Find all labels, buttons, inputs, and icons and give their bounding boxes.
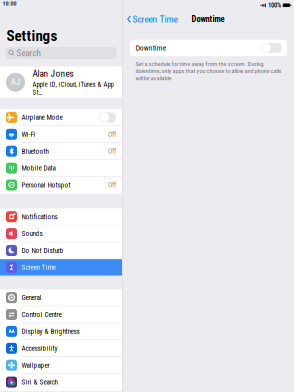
button[interactable]: Control Centre [0, 306, 122, 323]
staticText: Screen Time [132, 14, 177, 25]
button[interactable]: Notifications [0, 208, 122, 225]
button[interactable]: Accessibility [0, 340, 122, 357]
staticText: Display & Brightness [21, 327, 79, 336]
staticText: Wi-Fi [21, 130, 35, 138]
button[interactable]: Bluetooth [0, 143, 122, 160]
staticText: Personal Hotspot [21, 181, 70, 189]
button[interactable]: Search [5, 47, 116, 59]
staticText: Wallpaper [21, 361, 49, 369]
staticText: Notifications [21, 212, 57, 221]
button[interactable]: Wi-Fi [0, 126, 122, 143]
staticText: Settings [6, 27, 57, 45]
staticText: Siri & Search [21, 378, 57, 386]
staticText: AA [8, 328, 14, 334]
button[interactable]: Screen Time [0, 259, 122, 276]
staticText: Set a schedule for time away from the sc… [135, 60, 281, 82]
staticText: Airplane Mode [21, 113, 62, 122]
staticText: Downtime [136, 43, 167, 52]
staticText: 10:00 [2, 0, 16, 7]
staticText: Accessibility [21, 344, 57, 352]
button[interactable]: Personal Hotspot [0, 177, 122, 194]
staticText: Off [108, 181, 116, 189]
staticText: Apple ID, iCloud, iTunes & App St… [32, 80, 113, 96]
button[interactable]: Mobile Data [0, 160, 122, 177]
button[interactable]: Siri & Search [0, 374, 122, 391]
button[interactable]: Do Not Disturb [0, 242, 122, 259]
button[interactable]: General [0, 289, 122, 306]
button[interactable]: Sounds [0, 225, 122, 242]
staticText: Off [108, 130, 116, 138]
button[interactable]: Screen Time [123, 12, 181, 26]
staticText: Downtime [192, 14, 225, 24]
button[interactable]: AJ [0, 66, 122, 98]
staticText: Do Not Disturb [21, 246, 63, 255]
staticText: Sounds [21, 229, 42, 238]
button[interactable]: Wallpaper [0, 357, 122, 374]
staticText: Off [108, 147, 116, 155]
button[interactable]: AA [0, 323, 122, 340]
staticText: Control Centre [21, 310, 61, 319]
button[interactable]: Downtime [130, 40, 287, 56]
staticText: Screen Time [21, 263, 55, 272]
staticText: Search [17, 48, 41, 58]
staticText: 100% [268, 1, 281, 9]
staticText: Bluetooth [21, 147, 48, 155]
button[interactable]: Airplane Mode [0, 109, 122, 126]
staticText: AJ [11, 77, 20, 87]
staticText: Alan Jones [32, 68, 73, 79]
staticText: General [21, 293, 41, 302]
staticText: Mobile Data [21, 164, 55, 172]
